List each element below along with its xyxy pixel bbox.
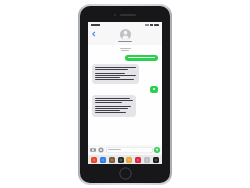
button[interactable] xyxy=(150,86,158,93)
button[interactable]: Contact avatar xyxy=(120,29,131,40)
button[interactable]: App 8 xyxy=(153,157,159,163)
button[interactable]: App 3 xyxy=(109,157,115,163)
button[interactable]: Home xyxy=(119,167,132,180)
button[interactable] xyxy=(125,55,158,61)
button[interactable]: Back xyxy=(90,30,98,38)
button[interactable]: App 4 xyxy=(118,157,124,163)
button[interactable]: App store xyxy=(98,147,104,153)
button[interactable]: App 2 xyxy=(100,157,106,163)
button[interactable]: Send xyxy=(154,147,160,153)
button[interactable] xyxy=(92,64,139,84)
button[interactable]: App 7 xyxy=(144,157,150,163)
button[interactable] xyxy=(92,95,136,117)
button[interactable]: App 5 xyxy=(126,157,132,163)
button[interactable]: App 6 xyxy=(135,157,141,163)
button[interactable]: Camera xyxy=(90,147,96,153)
button[interactable]: App 1 xyxy=(91,157,97,163)
button[interactable] xyxy=(106,147,153,153)
